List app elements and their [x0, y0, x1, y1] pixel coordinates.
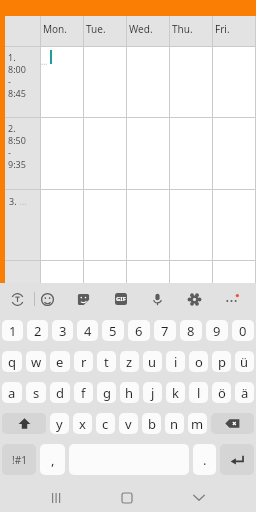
- button[interactable]: .: [193, 444, 216, 475]
- button[interactable]: s: [26, 382, 46, 403]
- staticText: ä: [241, 384, 249, 402]
- button[interactable]: 1: [2, 320, 23, 341]
- staticText: 3: [59, 322, 67, 340]
- button[interactable]: Emoji: [29, 283, 65, 315]
- staticText: ...: [41, 56, 48, 67]
- button[interactable]: r: [74, 351, 93, 372]
- button[interactable]: w: [26, 351, 46, 372]
- button[interactable]: 8: [180, 320, 202, 341]
- button[interactable]: 5: [102, 320, 124, 341]
- button[interactable]: q: [2, 351, 22, 372]
- button[interactable]: 0: [232, 320, 254, 341]
- button[interactable]: p: [212, 351, 231, 372]
- staticText: a: [8, 384, 16, 402]
- staticText: .: [203, 451, 207, 469]
- staticText: n: [170, 415, 179, 433]
- staticText: Thu.: [172, 22, 193, 36]
- button[interactable]: d: [50, 382, 70, 403]
- staticText: ö: [218, 384, 226, 402]
- staticText: 9: [213, 322, 221, 340]
- button[interactable]: 6: [128, 320, 150, 341]
- staticText: h: [125, 384, 134, 402]
- button[interactable]: ...: [40, 46, 83, 117]
- button[interactable]: Hide keyboard: [177, 493, 221, 512]
- staticText: s: [33, 384, 40, 402]
- button[interactable]: !#1: [2, 444, 36, 475]
- button[interactable]: Settings: [176, 283, 213, 315]
- staticText: x: [79, 415, 86, 433]
- button[interactable]: Wed.: [126, 16, 169, 46]
- button[interactable]: t: [97, 351, 116, 372]
- button[interactable]: ä: [235, 382, 254, 403]
- staticText: GIF: [116, 295, 126, 303]
- staticText: 8: [187, 322, 195, 340]
- button[interactable]: Voice input: [139, 283, 176, 315]
- button[interactable]: e: [50, 351, 70, 372]
- button[interactable]: 9: [206, 320, 228, 341]
- button[interactable]: Tue.: [83, 16, 126, 46]
- button[interactable]: i: [166, 351, 185, 372]
- staticText: 5: [109, 322, 117, 340]
- button[interactable]: 2: [27, 320, 48, 341]
- button[interactable]: z: [120, 351, 139, 372]
- button[interactable]: Text scan: [0, 283, 34, 315]
- staticText: i: [174, 353, 178, 371]
- staticText: 8:45: [8, 87, 26, 99]
- staticText: 9:35: [8, 158, 26, 170]
- button[interactable]: b: [142, 413, 161, 434]
- staticText: r: [81, 353, 87, 371]
- button[interactable]: 4: [77, 320, 98, 341]
- button[interactable]: j: [143, 382, 162, 403]
- button[interactable]: Fri.: [212, 16, 255, 46]
- button[interactable]: GIF: [102, 283, 139, 315]
- button[interactable]: More options: [213, 283, 250, 315]
- staticText: u: [148, 353, 157, 371]
- button[interactable]: m: [188, 413, 207, 434]
- button[interactable]: 7: [154, 320, 176, 341]
- staticText: 7: [161, 322, 169, 340]
- button[interactable]: Recent apps: [33, 493, 77, 512]
- button[interactable]: ö: [212, 382, 231, 403]
- button[interactable]: Home: [105, 493, 149, 512]
- button[interactable]: Thu.: [169, 16, 212, 46]
- button[interactable]: n: [165, 413, 184, 434]
- button[interactable]: y: [50, 413, 69, 434]
- staticText: 1: [9, 322, 17, 340]
- staticText: 1.: [8, 51, 16, 63]
- button[interactable]: x: [73, 413, 92, 434]
- button[interactable]: g: [97, 382, 116, 403]
- button[interactable]: ü: [235, 351, 254, 372]
- staticText: 0: [239, 322, 247, 340]
- staticText: z: [126, 353, 133, 371]
- staticText: o: [195, 353, 203, 371]
- staticText: Tue.: [86, 22, 106, 36]
- button[interactable]: u: [143, 351, 162, 372]
- button[interactable]: l: [189, 382, 208, 403]
- button[interactable]: Backspace: [211, 413, 254, 434]
- button[interactable]: 3: [52, 320, 73, 341]
- button[interactable]: o: [189, 351, 208, 372]
- button[interactable]: f: [74, 382, 93, 403]
- staticText: c: [102, 415, 109, 433]
- button[interactable]: k: [166, 382, 185, 403]
- button[interactable]: Mon.: [40, 16, 83, 46]
- button[interactable]: h: [120, 382, 139, 403]
- button[interactable]: Shift: [2, 413, 46, 434]
- button[interactable]: Enter: [220, 444, 254, 475]
- staticText: b: [148, 415, 156, 433]
- staticText: Wed.: [129, 22, 153, 36]
- button[interactable]: Stickers: [65, 283, 102, 315]
- staticText: j: [151, 384, 155, 402]
- button[interactable]: c: [96, 413, 115, 434]
- button[interactable]: ,: [40, 444, 65, 475]
- staticText: 8:50: [8, 134, 26, 146]
- staticText: v: [125, 415, 132, 433]
- button[interactable]: a: [2, 382, 22, 403]
- staticText: Fri.: [215, 22, 230, 36]
- staticText: f: [81, 384, 86, 402]
- staticText: w: [31, 353, 42, 371]
- staticText: -: [8, 75, 11, 87]
- button[interactable]: v: [119, 413, 138, 434]
- staticText: q: [8, 353, 16, 371]
